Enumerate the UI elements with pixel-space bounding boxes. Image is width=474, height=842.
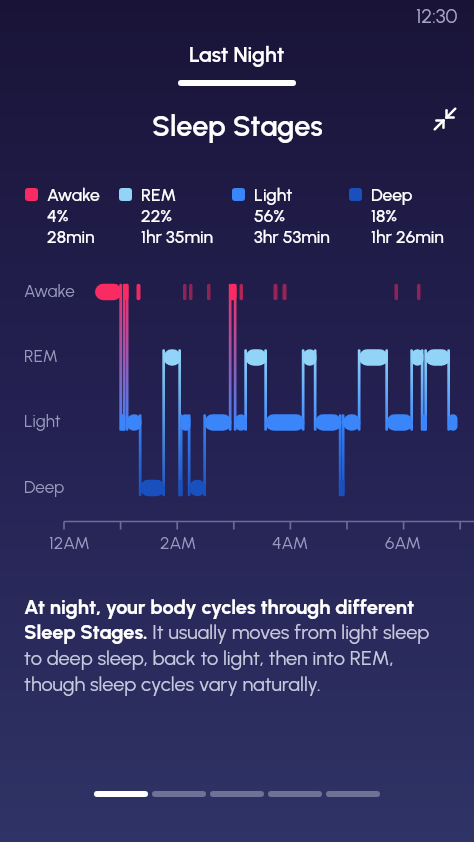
staticText: REM xyxy=(141,184,177,205)
button[interactable] xyxy=(210,791,264,797)
staticText: 18% xyxy=(371,205,397,226)
staticText: REM xyxy=(24,346,58,366)
staticText: 3hr 53min xyxy=(254,226,330,247)
button[interactable]: Awake xyxy=(25,184,100,247)
staticText: 1hr 35min xyxy=(141,226,214,247)
button[interactable]: REM xyxy=(119,184,214,247)
staticText: 22% xyxy=(141,205,173,226)
button[interactable] xyxy=(94,791,148,797)
staticText: Sleep Stages xyxy=(152,109,323,144)
staticText: Deep xyxy=(371,184,413,205)
staticText: Light xyxy=(24,411,61,431)
button[interactable]: Last Night xyxy=(178,42,296,86)
staticText: Awake xyxy=(47,184,100,205)
staticText: At night, your body cycles through diffe… xyxy=(24,595,446,696)
staticText: 56% xyxy=(254,205,286,226)
staticText: 2AM xyxy=(160,532,197,553)
button[interactable] xyxy=(268,791,322,797)
staticText: 4% xyxy=(47,205,69,226)
button[interactable]: Light xyxy=(232,184,330,247)
staticText: 12:30 xyxy=(416,4,458,28)
staticText: 6AM xyxy=(385,532,422,553)
staticText: Light xyxy=(254,184,293,205)
staticText: 28min xyxy=(47,226,95,247)
staticText: Awake xyxy=(24,281,75,301)
staticText: Last Night xyxy=(189,42,285,68)
staticText: 1hr 26min xyxy=(371,226,444,247)
staticText: 12AM xyxy=(49,532,90,553)
button[interactable] xyxy=(152,791,206,797)
button[interactable]: Deep xyxy=(349,184,444,247)
staticText: Deep xyxy=(24,477,65,497)
button[interactable]: Collapse xyxy=(432,106,458,132)
button[interactable] xyxy=(326,791,380,797)
staticText: 4AM xyxy=(272,532,309,553)
